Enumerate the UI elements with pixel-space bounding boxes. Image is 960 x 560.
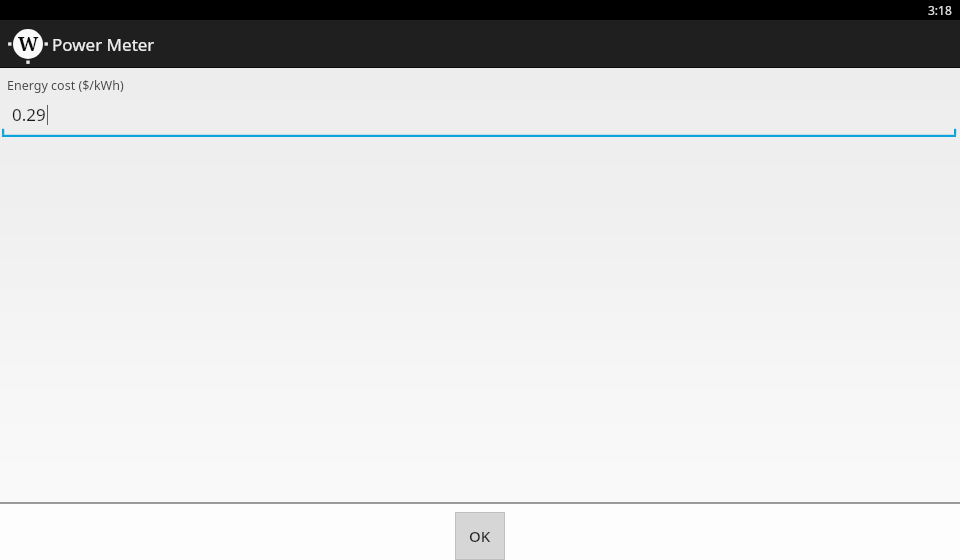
button[interactable]: OK: [456, 513, 504, 559]
staticText: 3:18: [928, 2, 952, 18]
staticText: OK: [469, 526, 491, 546]
staticText: 0.29: [12, 103, 46, 126]
button[interactable]: 0.29: [0, 102, 960, 137]
staticText: Power Meter: [52, 33, 155, 56]
staticText: Energy cost ($/kWh): [7, 77, 124, 94]
staticText: W: [18, 31, 39, 57]
